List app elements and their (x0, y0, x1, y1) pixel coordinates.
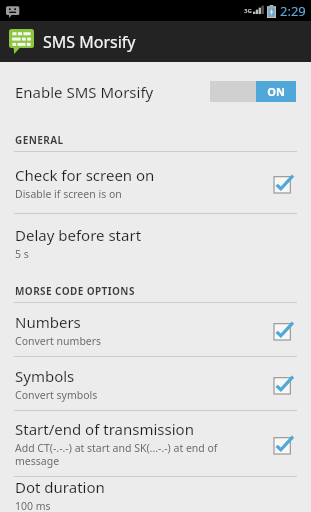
staticText: Convert symbols (15, 388, 98, 402)
staticText: 2:29 (280, 2, 306, 20)
staticText: Dot duration (15, 477, 105, 497)
staticText: 100 ms (15, 499, 51, 512)
staticText: MORSE CODE OPTIONS (15, 284, 135, 298)
button[interactable]: Delay before start (0, 214, 311, 272)
staticText: Convert numbers (15, 334, 102, 348)
staticText: Start/end of transmission (15, 419, 194, 439)
staticText: Disable if screen is on (15, 187, 122, 201)
button[interactable]: Numbers (0, 303, 311, 356)
staticText: Delay before start (15, 225, 142, 245)
button[interactable]: Enable SMS Morsify (0, 62, 311, 121)
staticText: ON (267, 84, 285, 99)
button[interactable]: Check for screen on (268, 168, 298, 198)
button[interactable]: Start/end of transmission (0, 411, 311, 476)
button[interactable]: Check for screen on (0, 152, 311, 213)
staticText: 3G (244, 7, 252, 15)
button[interactable]: Symbols (268, 369, 298, 399)
staticText: 5 s (15, 247, 29, 261)
button[interactable]: Start/end of transmission (268, 429, 298, 459)
staticText: Symbols (15, 366, 75, 386)
staticText: Add CT(-.-.-) at start and SK(...-.-) at… (15, 441, 258, 468)
button[interactable]: SMS Morsify (0, 21, 311, 62)
staticText: Check for screen on (15, 165, 155, 185)
staticText: SMS Morsify (43, 31, 136, 53)
button[interactable]: Numbers (268, 315, 298, 345)
staticText: Enable SMS Morsify (15, 82, 154, 102)
button[interactable]: Enable SMS Morsify toggle (210, 81, 296, 102)
staticText: Numbers (15, 312, 81, 332)
button[interactable]: Dot duration (0, 477, 311, 512)
staticText: GENERAL (15, 133, 64, 147)
button[interactable]: Symbols (0, 357, 311, 410)
